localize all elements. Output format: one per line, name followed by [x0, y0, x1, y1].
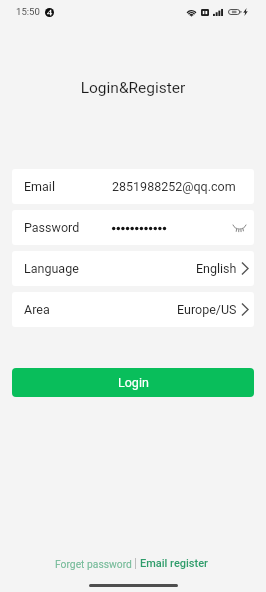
button[interactable]: Show password	[231, 220, 247, 236]
staticText: Email	[24, 179, 88, 194]
button[interactable]: Email	[12, 169, 254, 204]
staticText: Login&Register	[0, 79, 266, 97]
button[interactable]: Forget password	[49, 556, 135, 572]
button[interactable]: Language	[12, 251, 254, 286]
button[interactable]: Login	[12, 368, 254, 397]
staticText: Email register	[140, 557, 208, 570]
staticText: Login	[118, 375, 149, 390]
staticText: English	[196, 261, 237, 276]
button[interactable]: Email register	[136, 555, 214, 572]
staticText: Language	[24, 261, 88, 276]
staticText: 15:50	[16, 6, 40, 17]
button[interactable]: Area	[12, 292, 254, 327]
staticText: Forget password	[55, 558, 132, 570]
staticText: Area	[24, 302, 88, 317]
staticText: Europe/US	[177, 302, 237, 317]
staticText: Password	[24, 220, 88, 235]
button[interactable]: Password	[12, 210, 254, 245]
staticText: 2851988252@qq.com	[112, 179, 236, 194]
